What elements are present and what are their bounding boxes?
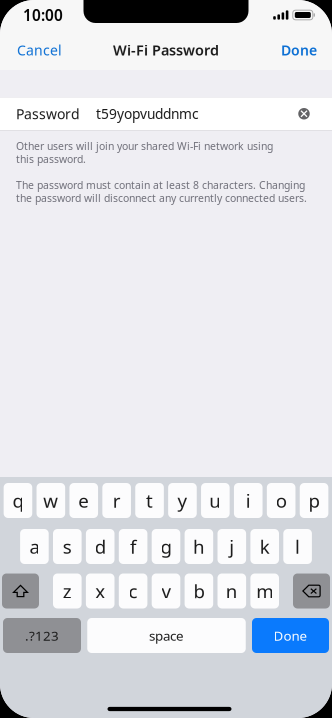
staticText: Done: [281, 40, 317, 60]
staticText: e: [78, 488, 89, 513]
staticText: j: [229, 534, 234, 559]
button[interactable]: y: [168, 483, 197, 518]
staticText: w: [43, 488, 58, 513]
staticText: p: [309, 488, 320, 513]
button[interactable]: o: [267, 483, 295, 518]
staticText: s: [63, 534, 72, 559]
button[interactable]: z: [53, 573, 82, 608]
button[interactable]: j: [217, 529, 246, 564]
staticText: c: [129, 578, 138, 604]
button[interactable]: d: [86, 529, 114, 564]
button[interactable]: Clear text: [289, 98, 319, 130]
button[interactable]: f: [119, 529, 147, 564]
staticText: x: [95, 578, 105, 604]
staticText: i: [246, 488, 251, 513]
staticText: The password must contain at least 8 cha…: [16, 178, 305, 192]
button[interactable]: a: [20, 529, 49, 564]
staticText: u: [209, 488, 221, 513]
staticText: v: [161, 578, 170, 604]
button[interactable]: q: [4, 483, 32, 518]
button[interactable]: Shift: [2, 573, 39, 608]
staticText: d: [95, 534, 106, 559]
staticText: space: [149, 626, 184, 645]
button[interactable]: g: [152, 529, 180, 564]
button[interactable]: i: [234, 483, 263, 518]
button[interactable]: e: [69, 483, 98, 518]
staticText: f: [130, 534, 136, 559]
button[interactable]: l: [283, 529, 312, 564]
staticText: Cancel: [17, 40, 62, 60]
button[interactable]: Done: [269, 32, 332, 68]
staticText: a: [29, 534, 39, 559]
button[interactable]: m: [250, 573, 279, 608]
button[interactable]: x: [86, 573, 114, 608]
staticText: o: [276, 488, 287, 513]
button[interactable]: space: [87, 618, 246, 653]
button[interactable]: n: [217, 573, 246, 608]
button[interactable]: w: [37, 483, 65, 518]
button[interactable]: p: [300, 483, 328, 518]
staticText: Wi-Fi Password: [113, 40, 219, 60]
staticText: Other users will join your shared Wi-Fi …: [16, 139, 273, 153]
button[interactable]: b: [185, 573, 213, 608]
staticText: l: [295, 534, 300, 559]
staticText: 10:00: [23, 5, 63, 25]
staticText: .?123: [25, 626, 59, 645]
staticText: b: [193, 578, 204, 604]
staticText: q: [12, 488, 23, 513]
staticText: the password will disconnect any current…: [16, 191, 307, 205]
staticText: g: [160, 534, 171, 559]
staticText: t: [146, 488, 153, 513]
staticText: k: [260, 534, 270, 559]
button[interactable]: k: [250, 529, 279, 564]
staticText: m: [256, 578, 273, 604]
staticText: n: [226, 578, 238, 604]
button[interactable]: c: [119, 573, 147, 608]
staticText: z: [63, 578, 72, 604]
staticText: h: [193, 534, 205, 559]
button[interactable]: v: [152, 573, 180, 608]
button[interactable]: s: [53, 529, 82, 564]
staticText: r: [113, 488, 121, 513]
button[interactable]: t: [135, 483, 164, 518]
staticText: Password: [16, 104, 80, 123]
staticText: y: [177, 488, 187, 513]
button[interactable]: Delete: [293, 573, 330, 608]
button[interactable]: r: [102, 483, 131, 518]
button[interactable]: .?123: [3, 618, 81, 653]
staticText: t59yopvuddnmc: [96, 104, 199, 123]
staticText: this password.: [16, 152, 86, 166]
staticText: Done: [273, 626, 307, 645]
button[interactable]: h: [185, 529, 213, 564]
button[interactable]: Done: [252, 618, 329, 653]
button[interactable]: u: [201, 483, 230, 518]
button[interactable]: Cancel: [0, 32, 74, 68]
